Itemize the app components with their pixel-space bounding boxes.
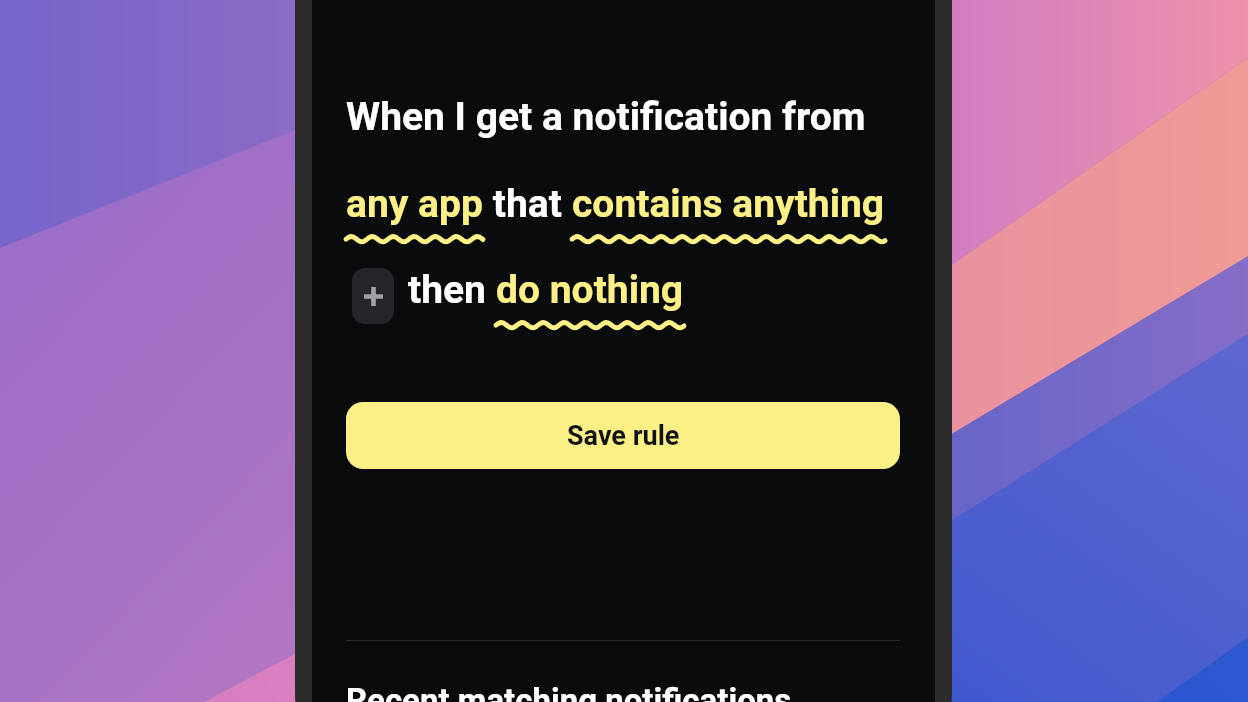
staticText: that [483, 181, 572, 227]
button[interactable]: Save rule [346, 402, 900, 469]
staticText: Save rule [567, 420, 680, 452]
staticText: Recent matching notifications [346, 681, 792, 702]
button[interactable]: Add action [352, 268, 394, 324]
staticText: then [408, 267, 496, 313]
staticText: any app [346, 181, 483, 227]
button[interactable]: any app [346, 181, 483, 227]
staticText: When I get a notification from [346, 94, 866, 140]
button[interactable]: do nothing [496, 267, 684, 313]
button[interactable]: contains anything [572, 181, 885, 227]
staticText: do nothing [496, 267, 684, 313]
staticText: contains anything [572, 181, 885, 227]
